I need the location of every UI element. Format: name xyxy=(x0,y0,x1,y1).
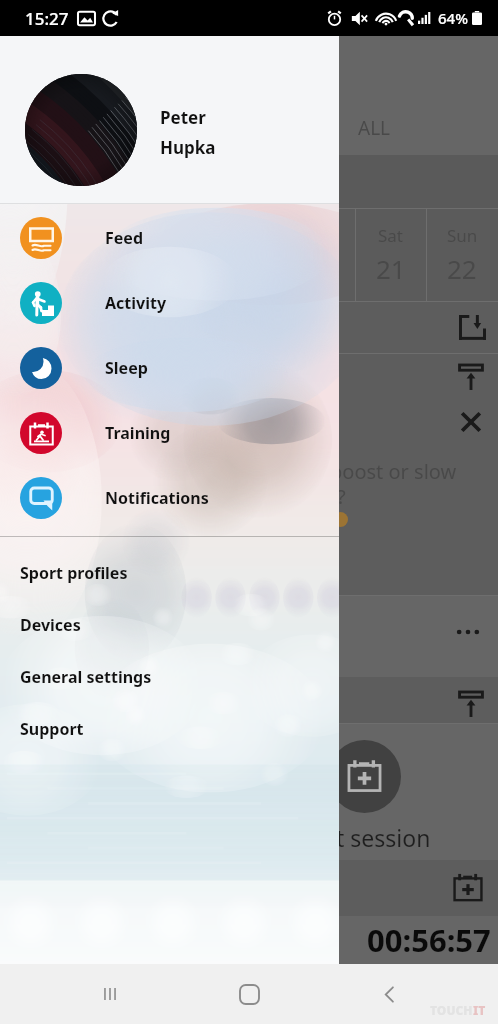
staticText: Sat xyxy=(378,224,404,247)
staticText: 64% xyxy=(438,8,468,28)
button[interactable]: Sport profiles xyxy=(0,547,339,599)
button[interactable]: Back xyxy=(359,964,419,1024)
staticText: Activity xyxy=(105,292,167,314)
staticText: Sleep xyxy=(105,357,148,379)
button[interactable]: General settings xyxy=(0,651,339,703)
staticText: 15:27 xyxy=(25,7,69,30)
staticText: Sport profiles xyxy=(20,562,128,584)
staticText: 00:56:57 xyxy=(367,919,491,961)
button[interactable]: Recents xyxy=(80,964,140,1024)
button[interactable]: Activity xyxy=(0,270,339,335)
staticText: ALL xyxy=(358,115,391,141)
staticText: Peter xyxy=(160,106,206,129)
button[interactable]: Support xyxy=(0,703,339,755)
staticText: Devices xyxy=(20,614,81,636)
staticText: TOUCH xyxy=(430,1002,473,1018)
staticText: 22 xyxy=(447,251,477,286)
staticText: Support xyxy=(20,718,84,740)
staticText: Feed xyxy=(105,227,144,249)
staticText: IT xyxy=(473,1002,486,1018)
button[interactable]: Notifications xyxy=(0,465,339,530)
staticText: ? xyxy=(337,483,346,510)
staticText: Hupka xyxy=(160,136,216,159)
button[interactable]: Training xyxy=(0,400,339,465)
staticText: t session xyxy=(336,822,431,853)
staticText: General settings xyxy=(20,666,152,688)
button[interactable]: Sleep xyxy=(0,335,339,400)
button[interactable]: Home xyxy=(219,964,279,1024)
staticText: Notifications xyxy=(105,487,209,509)
staticText: Training xyxy=(105,422,171,444)
button[interactable]: Devices xyxy=(0,599,339,651)
staticText: 21 xyxy=(376,251,406,286)
button[interactable]: Feed xyxy=(0,205,339,270)
staticText: boost or slow xyxy=(330,458,457,485)
staticText: Sun xyxy=(447,224,478,247)
